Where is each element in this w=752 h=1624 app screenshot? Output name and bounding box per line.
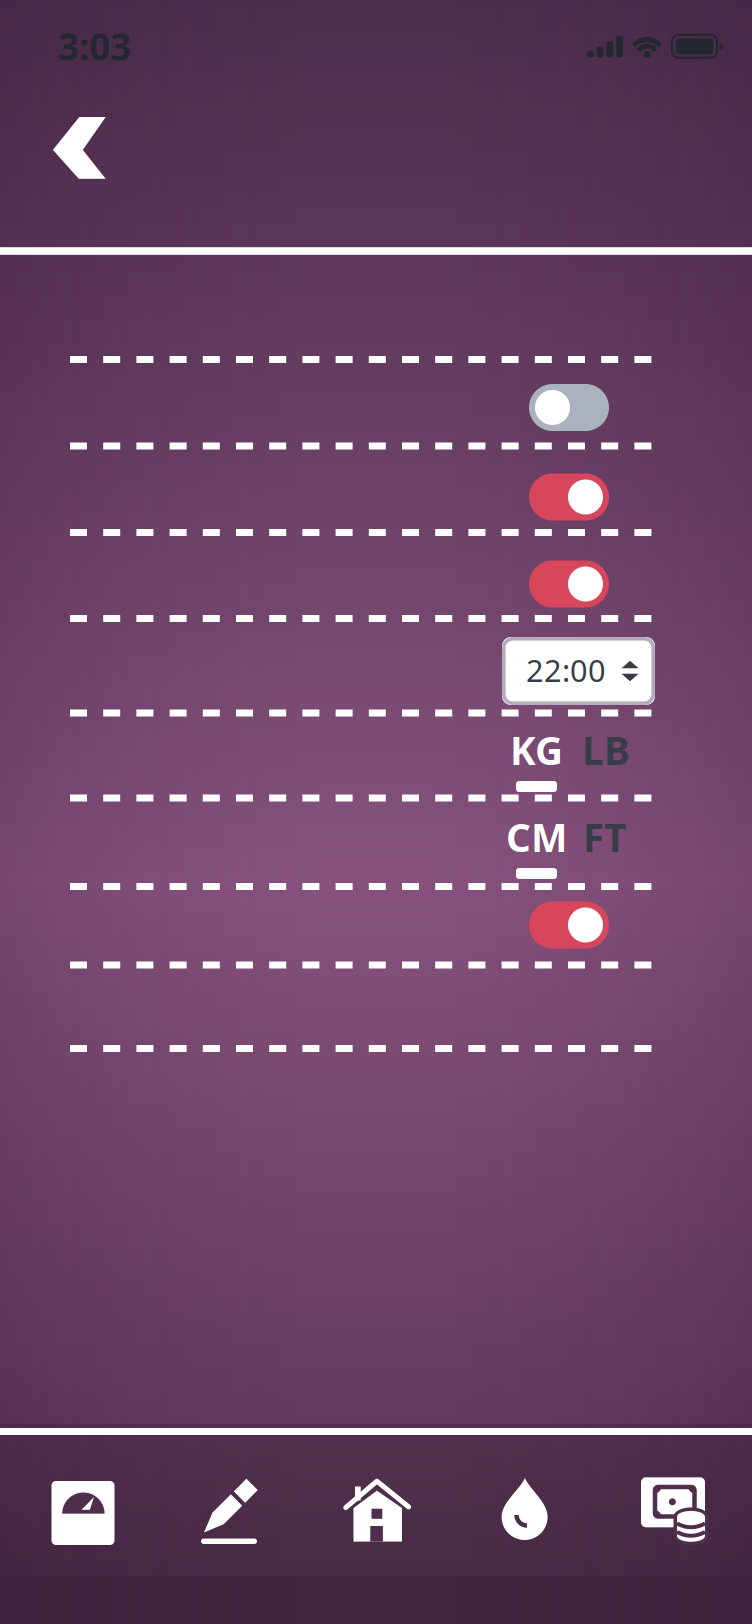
staticText: LB	[582, 724, 630, 776]
button[interactable]: Weight	[51, 1481, 115, 1545]
button[interactable]: Home	[344, 1477, 410, 1543]
staticText: FT	[583, 811, 626, 863]
staticText: 22:00	[526, 650, 606, 690]
button[interactable]: Back	[53, 117, 106, 179]
button[interactable]: Toggle option 1	[529, 384, 609, 431]
button[interactable]: Toggle option 3	[529, 560, 609, 607]
button[interactable]: CM	[509, 819, 563, 883]
button[interactable]: KG	[509, 732, 563, 796]
button[interactable]: LB	[579, 728, 633, 772]
button[interactable]: Water	[496, 1476, 552, 1542]
button[interactable]: FT	[577, 815, 631, 859]
button[interactable]: Edit	[195, 1476, 261, 1544]
button[interactable]: Toggle option 4	[529, 901, 609, 948]
staticText: 3:03	[58, 21, 131, 71]
button[interactable]: Toggle option 2	[529, 473, 609, 520]
staticText: CM	[506, 811, 567, 863]
button[interactable]: Finance	[637, 1474, 709, 1546]
button[interactable]: 22:00	[502, 637, 655, 705]
staticText: KG	[510, 724, 563, 776]
